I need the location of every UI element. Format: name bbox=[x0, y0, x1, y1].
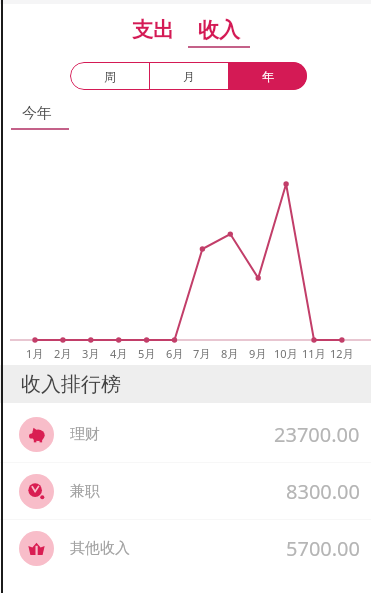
staticText: 7月 bbox=[193, 346, 211, 361]
staticText: 11月 bbox=[302, 346, 326, 361]
staticText: 9月 bbox=[249, 346, 267, 361]
staticText: 12月 bbox=[330, 346, 354, 361]
staticText: 今年 bbox=[22, 104, 52, 123]
button[interactable]: 兼职 bbox=[0, 463, 371, 519]
button[interactable]: 月 bbox=[150, 62, 228, 90]
staticText: 年 bbox=[262, 69, 274, 84]
staticText: 支出 bbox=[132, 17, 174, 43]
staticText: 8300.00 bbox=[286, 478, 360, 505]
staticText: 2月 bbox=[54, 346, 72, 361]
staticText: 月 bbox=[183, 69, 195, 84]
staticText: 6月 bbox=[166, 346, 184, 361]
staticText: 兼职 bbox=[70, 482, 100, 501]
staticText: 3月 bbox=[82, 346, 100, 361]
staticText: 23700.00 bbox=[274, 421, 360, 448]
button[interactable]: 支出 bbox=[122, 17, 184, 48]
staticText: 其他收入 bbox=[70, 539, 130, 558]
staticText: 5700.00 bbox=[286, 535, 360, 562]
button[interactable]: 年 bbox=[229, 62, 307, 90]
staticText: 周 bbox=[104, 69, 116, 84]
staticText: 理财 bbox=[70, 425, 100, 444]
staticText: 收入排行榜 bbox=[21, 372, 121, 397]
staticText: 收入 bbox=[198, 17, 240, 43]
button[interactable]: 理财 bbox=[0, 406, 371, 462]
staticText: 8月 bbox=[221, 346, 239, 361]
staticText: 4月 bbox=[110, 346, 128, 361]
staticText: 5月 bbox=[138, 346, 156, 361]
staticText: 10月 bbox=[274, 346, 298, 361]
staticText: 1月 bbox=[26, 346, 44, 361]
button[interactable]: 收入 bbox=[188, 17, 250, 48]
button[interactable]: 周 bbox=[70, 62, 149, 90]
button[interactable]: 其他收入 bbox=[0, 520, 371, 576]
